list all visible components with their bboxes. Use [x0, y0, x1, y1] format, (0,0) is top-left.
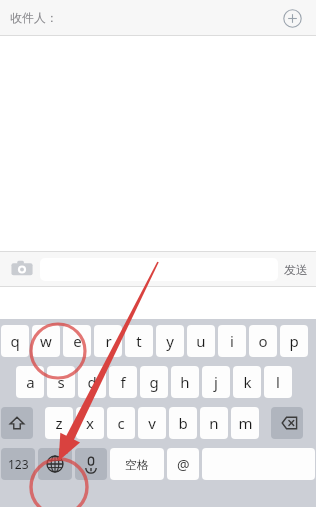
- button[interactable]: 123: [1, 448, 35, 480]
- button[interactable]: Backspace: [271, 407, 303, 439]
- button[interactable]: d: [78, 366, 106, 398]
- staticText: v: [148, 413, 156, 433]
- staticText: w: [40, 331, 52, 351]
- staticText: z: [55, 413, 63, 433]
- button[interactable]: i: [218, 325, 246, 357]
- staticText: g: [149, 372, 159, 392]
- button[interactable]: b: [169, 407, 197, 439]
- button[interactable]: 收件人：: [0, 0, 316, 35]
- button[interactable]: u: [187, 325, 215, 357]
- button[interactable]: x: [76, 407, 104, 439]
- button[interactable]: l: [264, 366, 292, 398]
- staticText: 发送: [284, 262, 308, 277]
- staticText: f: [120, 372, 126, 392]
- button[interactable]: r: [94, 325, 122, 357]
- staticText: q: [10, 331, 20, 351]
- staticText: s: [57, 372, 65, 392]
- staticText: m: [238, 413, 253, 433]
- staticText: 空格: [125, 457, 149, 472]
- button[interactable]: p: [280, 325, 308, 357]
- staticText: p: [289, 331, 299, 351]
- staticText: o: [258, 331, 268, 351]
- button[interactable]: e: [63, 325, 91, 357]
- button[interactable]: j: [202, 366, 230, 398]
- button[interactable]: s: [47, 366, 75, 398]
- staticText: j: [214, 372, 218, 392]
- staticText: u: [196, 331, 206, 351]
- staticText: e: [73, 331, 82, 351]
- button[interactable]: c: [107, 407, 135, 439]
- staticText: x: [86, 413, 94, 433]
- staticText: d: [87, 372, 97, 392]
- button[interactable]: f: [109, 366, 137, 398]
- button[interactable]: o: [249, 325, 277, 357]
- button[interactable]: m: [231, 407, 259, 439]
- button[interactable]: a: [16, 366, 44, 398]
- staticText: 123: [8, 456, 29, 472]
- button[interactable]: Switch keyboard language: [38, 448, 72, 480]
- staticText: l: [276, 372, 280, 392]
- staticText: @: [177, 455, 190, 474]
- staticText: r: [105, 331, 112, 351]
- staticText: k: [243, 372, 252, 392]
- button[interactable]: Camera: [8, 255, 36, 283]
- button[interactable]: q: [1, 325, 29, 357]
- button[interactable]: [40, 258, 278, 281]
- button[interactable]: z: [45, 407, 73, 439]
- button[interactable]: Shift: [1, 407, 33, 439]
- staticText: h: [180, 372, 190, 392]
- button[interactable]: h: [171, 366, 199, 398]
- button[interactable]: Voice input: [75, 448, 107, 480]
- button[interactable]: w: [32, 325, 60, 357]
- staticText: i: [230, 331, 234, 351]
- button[interactable]: 空格: [110, 448, 164, 480]
- staticText: n: [209, 413, 219, 433]
- button[interactable]: k: [233, 366, 261, 398]
- staticText: b: [178, 413, 188, 433]
- staticText: 收件人：: [10, 10, 58, 25]
- staticText: c: [117, 413, 125, 433]
- button[interactable]: g: [140, 366, 168, 398]
- button[interactable]: y: [156, 325, 184, 357]
- button[interactable]: Add recipient: [282, 8, 302, 28]
- button[interactable]: @: [167, 448, 199, 480]
- button[interactable]: 发送: [284, 262, 308, 277]
- button[interactable]: v: [138, 407, 166, 439]
- staticText: a: [26, 372, 35, 392]
- button[interactable]: n: [200, 407, 228, 439]
- button[interactable]: t: [125, 325, 153, 357]
- staticText: t: [136, 331, 142, 351]
- staticText: y: [166, 331, 174, 351]
